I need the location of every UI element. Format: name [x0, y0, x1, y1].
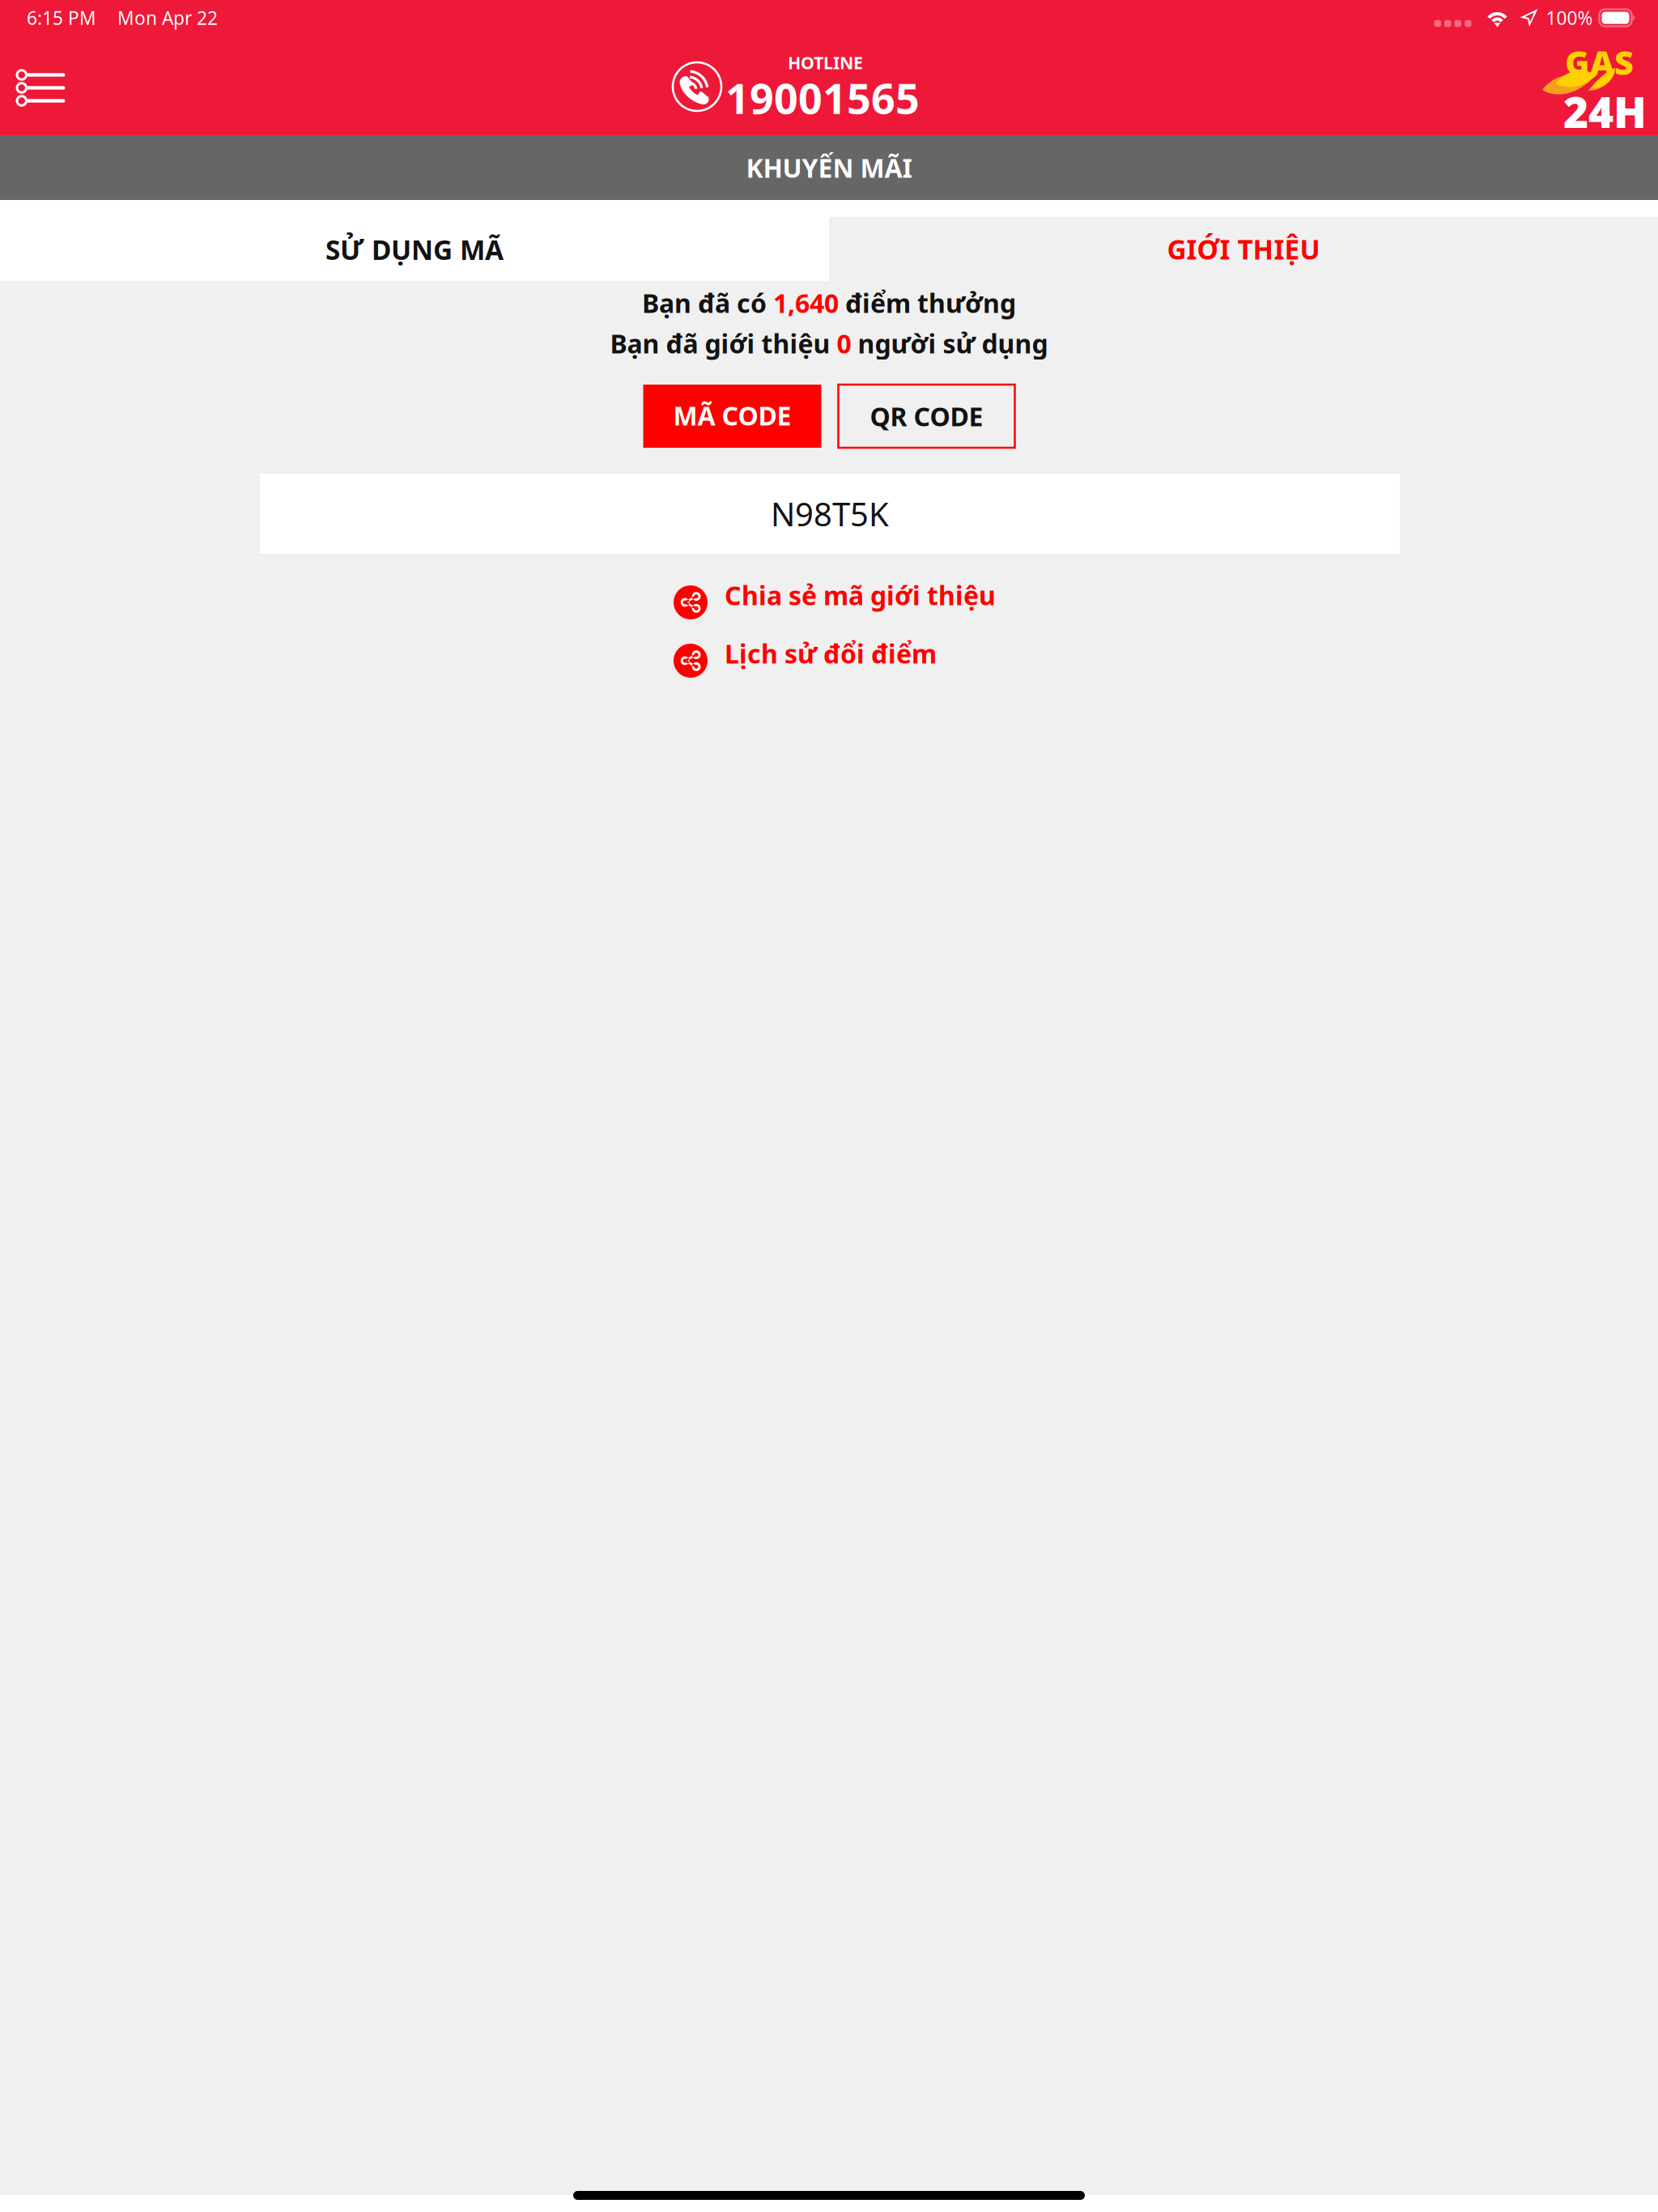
- staticText: Bạn đã có: [642, 286, 773, 320]
- button[interactable]: Hotline 19001565: [0, 40, 267, 135]
- button[interactable]: GIỚI THIỆU: [829, 200, 1658, 281]
- staticText: MÃ CODE: [673, 398, 791, 433]
- staticText: 0: [837, 326, 851, 361]
- staticText: 24H: [1563, 83, 1647, 140]
- staticText: Chia sẻ mã giới thiệu: [725, 578, 996, 612]
- staticText: HOTLINE: [788, 51, 863, 74]
- staticText: QR CODE: [870, 399, 983, 433]
- button[interactable]: N98T5K: [260, 474, 1400, 554]
- staticText: 1,640: [773, 286, 839, 320]
- button[interactable]: GAS 24H: [0, 40, 105, 135]
- button[interactable]: MÃ CODE: [643, 385, 821, 448]
- staticText: GAS: [1565, 40, 1634, 84]
- staticText: KHUYẾN MÃI: [746, 150, 912, 185]
- button[interactable]: Chia sẻ mã giới thiệu: [674, 580, 996, 625]
- staticText: Bạn đã giới thiệu: [610, 326, 837, 361]
- button[interactable]: Lịch sử đổi điểm: [674, 638, 937, 683]
- staticText: SỬ DỤNG MÃ: [325, 231, 504, 267]
- button[interactable]: Menu: [0, 40, 105, 135]
- button[interactable]: QR CODE: [838, 385, 1015, 448]
- staticText: điểm thưởng: [839, 286, 1016, 320]
- button[interactable]: SỬ DỤNG MÃ: [0, 200, 829, 281]
- staticText: GIỚI THIỆU: [1167, 231, 1320, 267]
- staticText: người sử dụng: [851, 326, 1048, 361]
- staticText: 100%: [1546, 6, 1593, 30]
- staticText: 6:15 PM: [27, 6, 96, 30]
- staticText: 19001565: [725, 70, 920, 126]
- staticText: Mon Apr 22: [117, 6, 218, 30]
- staticText: Lịch sử đổi điểm: [725, 636, 937, 671]
- staticText: N98T5K: [771, 492, 889, 535]
